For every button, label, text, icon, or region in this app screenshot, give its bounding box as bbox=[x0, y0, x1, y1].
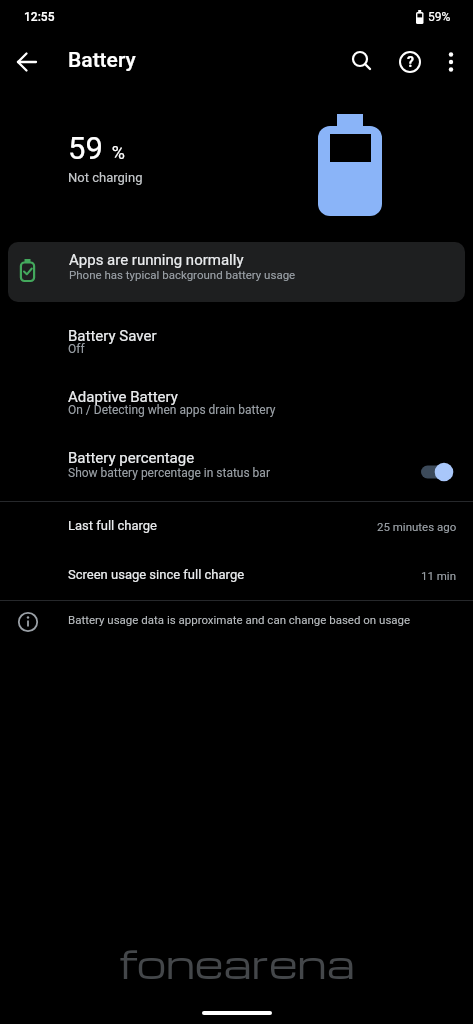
staticText: fonearena bbox=[118, 936, 355, 989]
staticText: Adaptive Battery bbox=[68, 388, 178, 406]
staticText: 59 % bbox=[68, 130, 125, 166]
button[interactable] bbox=[427, 38, 473, 86]
staticText: Phone has typical background battery usa… bbox=[69, 268, 296, 281]
staticText: Last full charge bbox=[68, 518, 158, 533]
button[interactable]: Apps are running normally bbox=[8, 242, 465, 302]
staticText: ? bbox=[407, 54, 414, 70]
staticText: Off bbox=[68, 342, 85, 356]
button[interactable]: Adaptive Battery bbox=[0, 372, 473, 434]
button[interactable]: Last full charge bbox=[0, 502, 473, 551]
button[interactable]: Screen usage since full charge bbox=[0, 551, 473, 600]
staticText: Show battery percentage in status bar bbox=[68, 466, 270, 480]
staticText: Screen usage since full charge bbox=[68, 567, 245, 582]
staticText: Battery percentage bbox=[68, 449, 195, 467]
staticText: 25 minutes ago bbox=[377, 520, 457, 533]
button[interactable]: ? bbox=[386, 38, 434, 86]
button[interactable] bbox=[3, 38, 51, 86]
staticText: 11 min bbox=[421, 569, 457, 582]
staticText: Battery bbox=[68, 48, 136, 73]
staticText: Battery Saver bbox=[68, 327, 157, 345]
staticText: 12:55 bbox=[24, 10, 55, 24]
button[interactable]: Battery percentage bbox=[0, 436, 473, 501]
staticText: Battery usage data is approximate and ca… bbox=[68, 613, 411, 626]
staticText: 59% bbox=[428, 10, 451, 24]
staticText: Apps are running normally bbox=[69, 251, 244, 269]
button[interactable] bbox=[338, 38, 386, 86]
button[interactable]: Battery Saver bbox=[0, 312, 473, 372]
staticText: Not charging bbox=[68, 170, 143, 185]
staticText: On / Detecting when apps drain battery bbox=[68, 403, 276, 417]
